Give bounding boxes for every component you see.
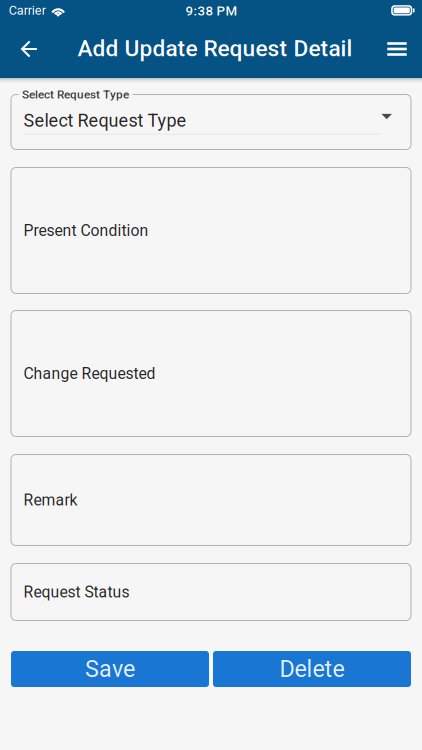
staticText: Change Requested xyxy=(23,364,155,383)
button[interactable]: Change Requested xyxy=(11,310,411,436)
staticText: Carrier xyxy=(9,3,46,18)
staticText: Select Request Type xyxy=(23,110,186,131)
staticText: 9:38 PM xyxy=(185,3,237,19)
staticText: Add Update Request Detail xyxy=(77,35,352,62)
button[interactable]: Remark xyxy=(11,454,411,545)
staticText: Remark xyxy=(23,491,77,509)
button[interactable]: Request Status xyxy=(11,563,411,620)
staticText: Save xyxy=(85,655,135,683)
button[interactable]: Delete xyxy=(213,651,411,687)
staticText: Present Condition xyxy=(23,221,148,240)
staticText: Delete xyxy=(279,655,344,683)
button[interactable]: Back xyxy=(6,25,52,73)
staticText: Request Status xyxy=(23,583,129,601)
button[interactable]: Select Request Type xyxy=(11,94,411,149)
button[interactable]: Menu xyxy=(376,25,418,73)
button[interactable]: Save xyxy=(11,651,209,687)
button[interactable]: Present Condition xyxy=(11,167,411,293)
staticText: Select Request Type xyxy=(22,88,129,101)
